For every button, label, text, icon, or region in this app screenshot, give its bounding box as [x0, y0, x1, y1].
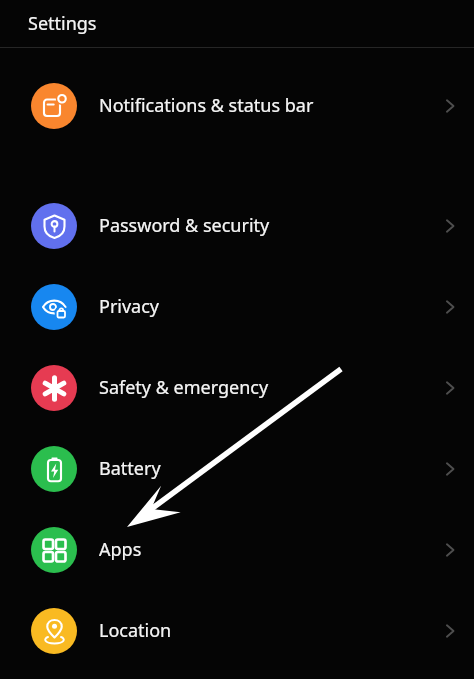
staticText: Location — [99, 618, 426, 643]
other: Open Privacy — [426, 266, 474, 347]
staticText: Apps — [99, 537, 426, 562]
staticText: Battery — [99, 456, 426, 481]
staticText: Notifications & status bar — [99, 93, 426, 118]
button[interactable]: Password & security — [0, 185, 474, 266]
button[interactable]: Privacy — [0, 266, 474, 347]
button[interactable]: Apps — [0, 509, 474, 590]
staticText: Settings — [28, 11, 97, 36]
staticText: Password & security — [99, 213, 426, 238]
other: Open Password & security — [426, 185, 474, 266]
other: Open Apps — [426, 509, 474, 590]
other: Open Notifications & status bar — [426, 65, 474, 146]
staticText: Privacy — [99, 294, 426, 319]
button[interactable]: Safety & emergency — [0, 347, 474, 428]
staticText: Safety & emergency — [99, 375, 426, 400]
other: Open Safety & emergency — [426, 347, 474, 428]
button[interactable]: Location — [0, 590, 474, 671]
button[interactable]: Notifications & status bar — [0, 65, 474, 146]
button[interactable]: Battery — [0, 428, 474, 509]
other: Open Battery — [426, 428, 474, 509]
other: Open Location — [426, 590, 474, 671]
